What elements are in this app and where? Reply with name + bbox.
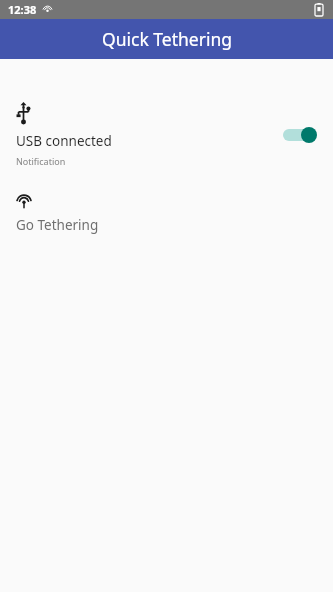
staticText: Go Tethering: [16, 216, 99, 234]
staticText: Notification: [16, 155, 66, 167]
button[interactable]: USB connected: [0, 102, 333, 167]
button[interactable]: Toggle USB tethering: [283, 125, 317, 145]
button[interactable]: Go Tethering: [0, 193, 333, 234]
staticText: Quick Tethering: [102, 27, 232, 51]
staticText: 12:38: [8, 2, 37, 17]
staticText: USB connected: [16, 132, 112, 150]
